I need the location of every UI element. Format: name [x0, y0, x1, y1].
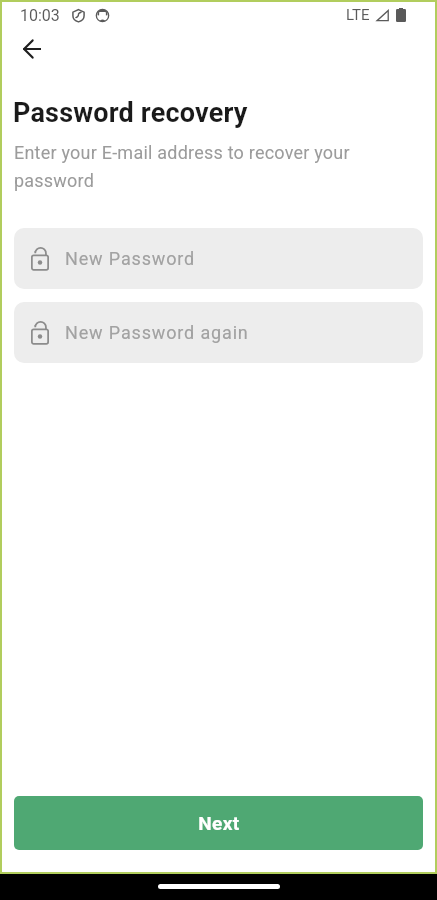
button[interactable]: Back: [13, 30, 51, 68]
staticText: New Password again: [65, 322, 249, 343]
button[interactable]: Next: [14, 796, 423, 850]
staticText: 10:03: [20, 6, 60, 25]
staticText: Password recovery: [13, 97, 248, 129]
button[interactable]: New Password again: [14, 302, 423, 363]
staticText: Enter your E-mail address to recover you…: [14, 142, 362, 192]
staticText: LTE: [346, 6, 370, 24]
staticText: New Password: [65, 248, 196, 269]
staticText: Next: [198, 812, 240, 834]
button[interactable]: New Password: [14, 228, 423, 289]
